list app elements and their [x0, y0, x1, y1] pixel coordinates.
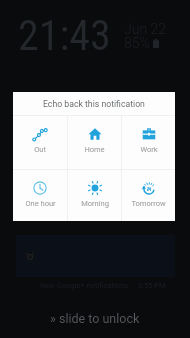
staticText: One hour	[25, 199, 56, 208]
button[interactable]: Work	[122, 116, 175, 169]
staticText: » slide to unlock	[50, 311, 140, 326]
button[interactable]: Tomorrow	[122, 170, 175, 221]
staticText: Morning	[81, 199, 109, 208]
staticText: Echo back this notification	[43, 99, 145, 109]
staticText: Work	[140, 145, 158, 154]
button[interactable]: New Google+ notifications	[40, 278, 166, 292]
button[interactable]: Out	[13, 116, 67, 169]
staticText: 85%	[124, 35, 150, 51]
staticText: Out	[34, 145, 46, 154]
staticText: 21:43	[18, 11, 111, 60]
staticText: 3:55 PM	[138, 281, 166, 290]
staticText: Jun 22	[124, 21, 167, 37]
staticText: Home	[84, 145, 105, 154]
button[interactable]: Morning	[68, 170, 121, 221]
staticText: Tomorrow	[131, 199, 166, 208]
button[interactable]: Home	[68, 116, 121, 169]
button[interactable]: » slide to unlock	[50, 311, 140, 326]
button[interactable]: One hour	[13, 170, 67, 221]
staticText: New Google+ notifications	[40, 281, 129, 290]
